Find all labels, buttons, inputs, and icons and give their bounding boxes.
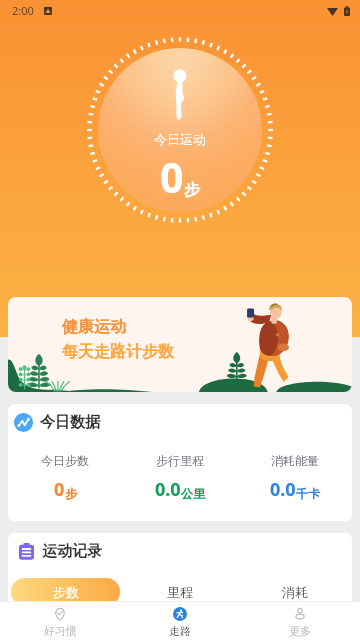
button[interactable]: 健康运动 <box>8 297 352 392</box>
button[interactable]: 步数 <box>11 578 120 606</box>
staticText: 每天走路计步数 <box>62 342 174 362</box>
staticText: 公里 <box>181 486 205 501</box>
staticText: 步数 <box>53 584 79 600</box>
button[interactable]: 今日步数 <box>8 453 122 502</box>
staticText: 运动记录 <box>42 542 102 561</box>
button[interactable]: 更多 <box>240 602 360 640</box>
staticText: 走路 <box>169 624 191 638</box>
button[interactable]: 消耗能量 <box>237 453 352 502</box>
button[interactable]: 里程 <box>122 578 237 606</box>
staticText: 0.0 <box>155 477 181 502</box>
staticText: 2:00 <box>12 3 34 18</box>
staticText: 今日步数 <box>41 453 89 468</box>
staticText: 更多 <box>289 624 311 638</box>
staticText: 今日数据 <box>40 413 100 432</box>
staticText: 消耗 <box>282 584 308 600</box>
button[interactable]: 步行里程 <box>122 453 237 502</box>
staticText: 步 <box>184 180 200 200</box>
staticText: 步行里程 <box>156 453 204 468</box>
staticText: 消耗能量 <box>271 453 319 468</box>
staticText: 0 <box>54 477 65 502</box>
staticText: 千卡 <box>296 486 320 501</box>
button[interactable]: 消耗 <box>237 578 352 606</box>
staticText: 健康运动 <box>62 317 126 337</box>
staticText: 步 <box>65 486 77 501</box>
staticText: 里程 <box>167 584 193 600</box>
staticText: 今日运动 <box>154 131 206 147</box>
staticText: 0.0 <box>270 477 296 502</box>
button[interactable]: 好习惯 <box>0 602 120 640</box>
staticText: 0 <box>160 149 184 205</box>
button[interactable]: 走路 <box>120 602 240 640</box>
staticText: 好习惯 <box>44 624 77 638</box>
